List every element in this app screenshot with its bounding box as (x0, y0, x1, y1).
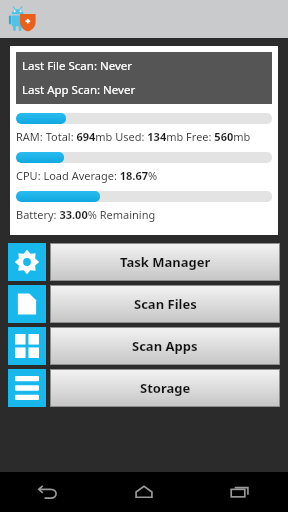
other: Task Manager (14, 249, 40, 275)
button[interactable]: Recent apps (192, 472, 288, 512)
staticText: Scan Files (134, 295, 197, 313)
button[interactable]: Scan Files (8, 285, 280, 323)
staticText: Last File Scan: Never (22, 58, 133, 74)
button[interactable]: Scan Apps (8, 327, 280, 365)
staticText: Battery: 33.00% Remaining (16, 207, 156, 222)
staticText: Task Manager (120, 253, 211, 271)
other: Scan Files (15, 292, 39, 316)
other: Scan Apps (15, 334, 39, 358)
button[interactable]: Task Manager (8, 243, 280, 281)
staticText: Last App Scan: Never (22, 82, 136, 98)
staticText: RAM: Total: 694mb Used: 134mb Free: 560m… (16, 129, 251, 144)
staticText: Scan Apps (132, 337, 198, 355)
button[interactable]: Storage (8, 369, 280, 407)
button[interactable]: Home (96, 472, 192, 512)
staticText: Storage (140, 379, 191, 397)
staticText: CPU: Load Average: 18.67% (16, 168, 158, 183)
button[interactable]: Back (0, 472, 96, 512)
other: Storage (15, 376, 39, 400)
